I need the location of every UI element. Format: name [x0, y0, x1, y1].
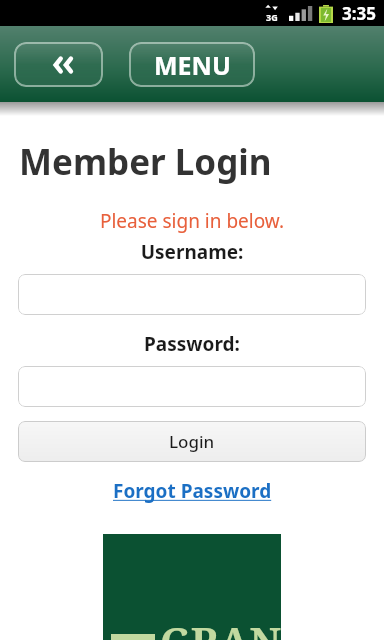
button[interactable] — [18, 274, 366, 315]
staticText: 3:35 — [342, 2, 376, 25]
button[interactable] — [18, 366, 366, 407]
staticText: MENU — [154, 48, 231, 82]
staticText: Username: — [0, 239, 384, 265]
staticText: Forgot Password — [113, 478, 272, 504]
button[interactable]: Login — [18, 421, 366, 462]
button[interactable]: Forgot Password — [107, 476, 278, 506]
button[interactable]: Back — [14, 42, 103, 87]
staticText: 3G — [266, 11, 278, 23]
staticText: Login — [169, 430, 215, 453]
staticText: Password: — [0, 331, 384, 357]
staticText: GRAN — [160, 614, 281, 640]
staticText: Member Login — [19, 138, 272, 186]
staticText: Please sign in below. — [0, 208, 384, 234]
button[interactable]: MENU — [129, 42, 255, 87]
